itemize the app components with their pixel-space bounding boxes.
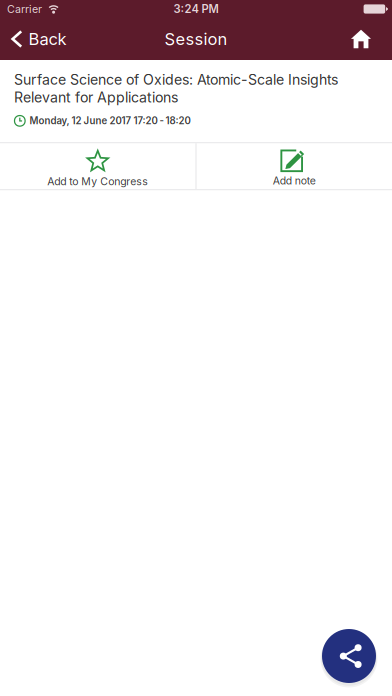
staticText: Monday, 12 June 2017 17:20 - 18:20: [30, 115, 191, 127]
button[interactable]: Back: [0, 18, 77, 60]
staticText: Carrier: [7, 2, 42, 15]
staticText: Back: [29, 29, 67, 49]
staticText: Surface Science of Oxides: Atomic-Scale …: [14, 71, 338, 106]
button[interactable]: Home: [333, 18, 392, 60]
button[interactable]: Add to My Congress: [0, 143, 195, 189]
staticText: Add to My Congress: [47, 175, 148, 188]
button[interactable]: Add note: [196, 143, 392, 189]
staticText: Session: [164, 29, 227, 49]
button[interactable]: Share: [320, 627, 378, 685]
staticText: Add note: [273, 174, 316, 187]
staticText: 3:24 PM: [173, 2, 218, 16]
